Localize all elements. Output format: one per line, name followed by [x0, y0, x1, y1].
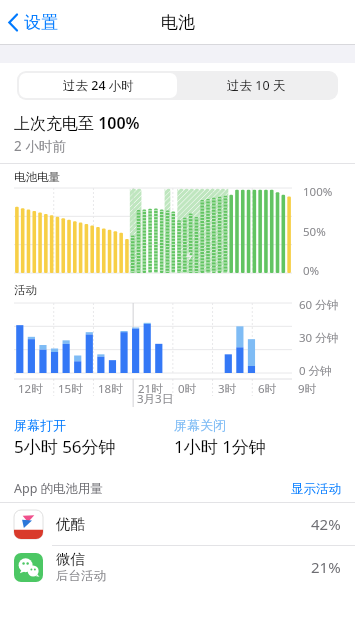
button[interactable]: 微信: [0, 546, 355, 588]
staticText: 活动: [14, 283, 37, 297]
staticText: App 的电池用量: [14, 480, 104, 497]
staticText: 屏幕关闭: [174, 417, 226, 433]
staticText: 42%: [311, 514, 341, 534]
staticText: 电池电量: [14, 170, 60, 184]
staticText: 30 分钟: [299, 330, 339, 346]
button[interactable]: 显示活动: [291, 481, 341, 497]
staticText: 后台活动: [56, 568, 106, 584]
staticText: 电池: [161, 12, 195, 33]
staticText: 100%: [303, 184, 333, 200]
staticText: 微信: [56, 550, 85, 568]
button[interactable]: 优酷: [0, 503, 355, 545]
staticText: 过去 24 小时: [63, 77, 134, 94]
staticText: 60 分钟: [299, 297, 339, 313]
staticText: 设置: [24, 12, 58, 33]
staticText: 21时: [138, 381, 163, 397]
staticText: 5小时 56分钟: [14, 435, 116, 458]
staticText: 优酷: [56, 515, 85, 533]
button[interactable]: 过去 10 天: [177, 73, 336, 98]
staticText: 50%: [303, 224, 326, 240]
staticText: 12时: [18, 381, 43, 397]
staticText: 2 小时前: [14, 137, 66, 155]
staticText: 上次充电至 100%: [14, 112, 140, 134]
staticText: 3月3日: [137, 391, 174, 407]
staticText: 18时: [98, 381, 123, 397]
staticText: 0时: [178, 381, 197, 397]
staticText: 1小时 1分钟: [174, 435, 266, 458]
staticText: 0 分钟: [299, 363, 332, 379]
staticText: 3时: [218, 381, 237, 397]
staticText: 6时: [258, 381, 277, 397]
staticText: 21%: [311, 557, 341, 577]
staticText: 9时: [298, 381, 317, 397]
button[interactable]: 设置: [0, 6, 66, 39]
staticText: 0%: [303, 263, 320, 279]
staticText: 屏幕打开: [14, 417, 66, 433]
staticText: 过去 10 天: [227, 77, 286, 94]
staticText: 15时: [58, 381, 83, 397]
button[interactable]: 过去 24 小时: [19, 73, 177, 98]
staticText: 显示活动: [291, 481, 341, 497]
